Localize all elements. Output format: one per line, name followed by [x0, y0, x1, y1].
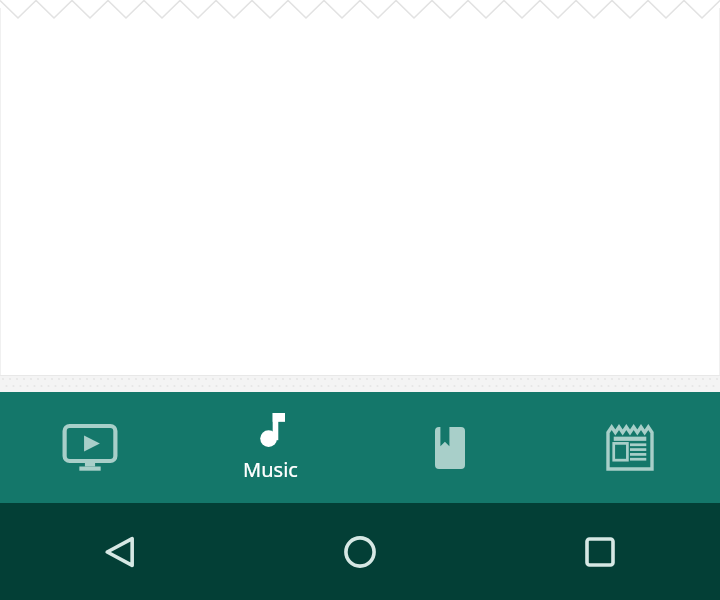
button[interactable]: Music [180, 392, 360, 503]
staticText: Music [243, 456, 298, 483]
button[interactable]: Newsstand [540, 392, 720, 503]
button[interactable]: Movies & TV [0, 392, 180, 503]
button[interactable]: Back [0, 503, 240, 600]
button[interactable]: Books [360, 392, 540, 503]
button[interactable]: Home [240, 503, 480, 600]
button[interactable]: Recent apps [480, 503, 720, 600]
